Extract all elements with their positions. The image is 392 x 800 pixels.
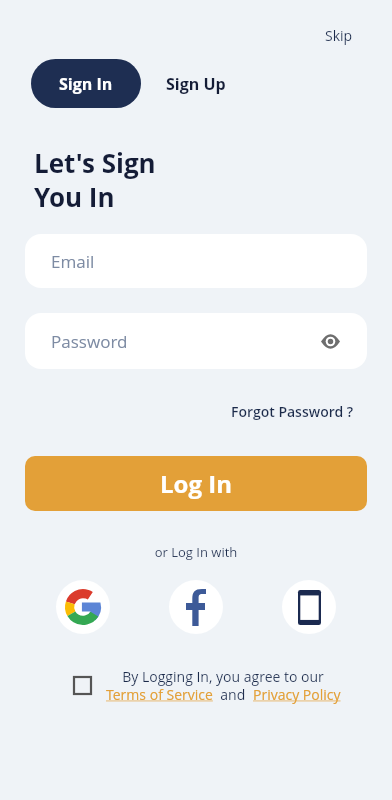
button[interactable]: Sign in with Google <box>56 580 110 634</box>
staticText: Sign Up <box>166 73 226 95</box>
button[interactable]: Sign in with Facebook <box>169 580 223 634</box>
staticText: By Logging In, you agree to our <box>103 667 343 686</box>
staticText: Email <box>51 250 95 273</box>
staticText: Forgot Password ? <box>231 402 354 421</box>
button[interactable]: Terms of Service <box>106 685 213 704</box>
staticText: or Log In with <box>0 543 392 561</box>
staticText: Sign In <box>59 73 113 95</box>
button[interactable]: Password <box>25 313 367 369</box>
staticText: and <box>213 685 253 704</box>
staticText: Skip <box>325 26 353 45</box>
button[interactable]: Sign in with phone number <box>282 580 336 634</box>
button[interactable]: Email <box>25 234 367 288</box>
button[interactable]: Sign Up <box>152 59 240 108</box>
button[interactable]: Skip <box>313 20 365 50</box>
button[interactable]: Forgot Password ? <box>231 398 354 424</box>
button[interactable]: Show password <box>315 326 345 356</box>
staticText: Password <box>51 330 128 353</box>
button[interactable]: Log In <box>25 456 367 511</box>
button[interactable]: Agree to terms <box>73 676 92 695</box>
button[interactable]: Sign In <box>31 59 141 108</box>
staticText: Let's Sign You In <box>34 145 156 215</box>
staticText: Log In <box>160 467 232 500</box>
button[interactable]: Privacy Policy <box>253 685 341 704</box>
